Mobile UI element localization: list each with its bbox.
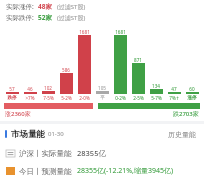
staticText: 5-7% [151, 95, 162, 101]
staticText: 市场量能 [11, 129, 45, 140]
staticText: 0-2% [115, 95, 126, 101]
staticText: 今日丨预测量能 [19, 167, 72, 176]
staticText: 1681 [115, 29, 126, 35]
staticText: (过滤ST股) [57, 14, 86, 22]
staticText: 2-5% [133, 95, 144, 101]
staticText: 涨2360家 [5, 110, 31, 118]
staticText: 01-30 [48, 130, 64, 138]
other: 量能图例 [6, 150, 15, 157]
staticText: 5-2% [61, 95, 72, 101]
staticText: 134 [152, 83, 160, 89]
button[interactable]: 历史量能 [166, 127, 198, 142]
staticText: 871 [134, 57, 142, 63]
staticText: 7-5% [43, 95, 54, 101]
staticText: 跌停 [7, 95, 17, 101]
staticText: >7% [25, 95, 35, 101]
staticText: 46 [27, 86, 33, 92]
staticText: 47 [171, 86, 177, 92]
staticText: 1681 [79, 29, 90, 35]
staticText: 涨停 [187, 95, 197, 101]
staticText: 2-0% [79, 95, 90, 101]
staticText: 28355亿(-12.21%,缩量3945亿) [77, 166, 174, 176]
staticText: 102 [44, 85, 52, 91]
staticText: 平 [100, 95, 105, 101]
staticText: 48家 [38, 2, 52, 11]
staticText: 52家 [38, 13, 52, 22]
staticText: 586 [62, 67, 70, 73]
staticText: 跌2703家 [173, 110, 199, 118]
staticText: 沪深丨实际量能 [19, 149, 72, 158]
staticText: (过滤ST股) [57, 3, 86, 11]
staticText: 历史量能 [168, 130, 196, 139]
staticText: 28355亿 [77, 148, 106, 158]
staticText: 60 [189, 86, 195, 92]
staticText: 实际跌停: [6, 13, 34, 22]
staticText: 105 [98, 85, 106, 91]
staticText: 实际涨停: [6, 2, 34, 11]
staticText: 57 [9, 86, 15, 92]
staticText: 7%↑ [169, 95, 180, 101]
